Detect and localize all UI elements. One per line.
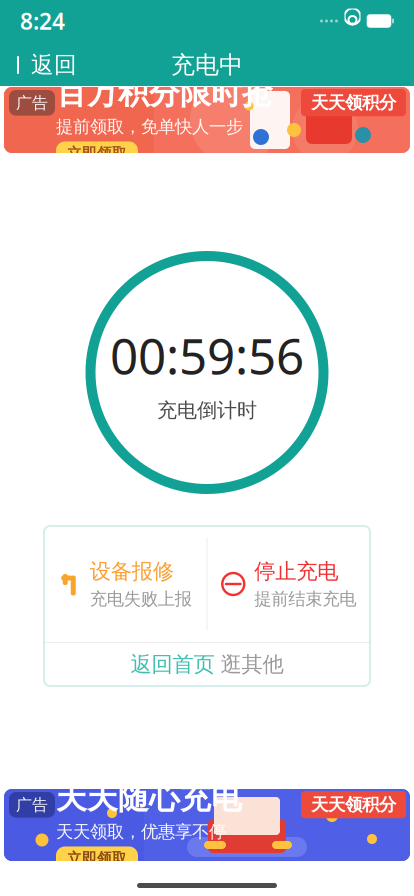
staticText: 百万积分限时抢 [56,74,273,112]
staticText: 天天随心充电 [56,779,242,817]
staticText: 充电中 [171,50,243,80]
staticText: 充电倒计时 [157,398,257,423]
button[interactable]: 天天领积分 [0,87,414,153]
staticText: 天天领积分 [311,92,396,113]
button[interactable]: 返回 [0,43,91,87]
staticText: 提前结束充电 [254,588,356,610]
button[interactable]: 天天领积分 [0,789,414,861]
staticText: 00:59:56 [110,322,304,388]
staticText: 设备报修 [90,558,174,584]
staticText: 提前领取，免单快人一步 [56,116,243,137]
staticText: 逛其他 [220,651,283,678]
staticText: 天天领取，优惠享不停 [56,821,226,842]
button[interactable]: 停止充电 [207,526,370,642]
staticText: 返回 [31,51,77,79]
staticText: 广告 [16,795,48,815]
staticText: 天天领积分 [311,794,396,815]
button[interactable]: 设备报修 [44,526,206,642]
staticText: 立即领取 [67,849,127,867]
staticText: 立即领取 [67,144,127,162]
staticText: 广告 [16,93,48,113]
staticText: 8:24 [20,6,65,36]
staticText: 充电失败上报 [90,588,192,610]
button[interactable]: 返回首页 [44,643,370,686]
staticText: 停止充电 [254,558,338,584]
staticText: 返回首页 [130,651,214,678]
